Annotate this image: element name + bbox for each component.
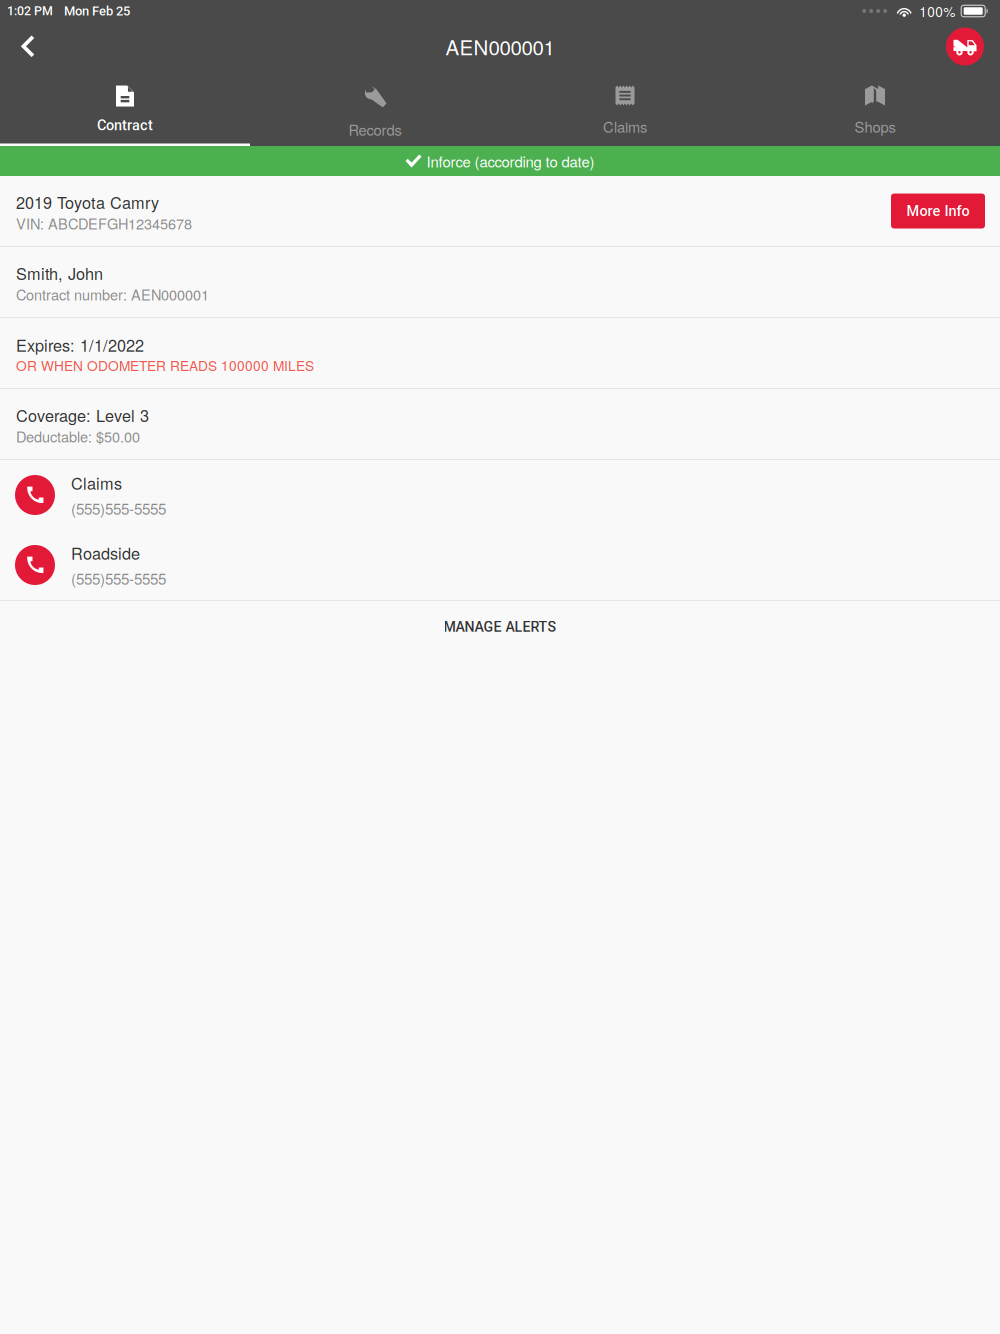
staticText: 2019 Toyota Camry xyxy=(16,190,159,214)
staticText: OR WHEN ODOMETER READS 100000 MILES xyxy=(16,355,314,375)
button[interactable]: Roadside assistance xyxy=(946,22,1000,70)
button[interactable]: More Info xyxy=(891,193,985,228)
staticText: More Info xyxy=(906,202,969,219)
staticText: Claims xyxy=(603,116,647,137)
staticText: AEN000001 xyxy=(445,32,554,61)
button[interactable]: Contract xyxy=(0,71,250,146)
button[interactable]: Claims xyxy=(500,71,750,146)
staticText: Deductable: $50.00 xyxy=(16,426,140,446)
button[interactable]: Roadside xyxy=(0,530,1000,600)
staticText: Roadside xyxy=(71,541,140,564)
staticText: VIN: ABCDEFGH12345678 xyxy=(16,213,192,233)
staticText: Contract xyxy=(97,117,153,134)
staticText: Claims xyxy=(71,471,122,494)
staticText: 100% xyxy=(919,1,955,21)
button[interactable]: MANAGE ALERTS xyxy=(0,601,1000,653)
button[interactable]: Back xyxy=(0,22,52,70)
staticText: Smith, John xyxy=(16,261,103,285)
staticText: (555)555-5555 xyxy=(71,567,166,589)
staticText: 1:02 PM xyxy=(7,4,53,18)
staticText: Expires: 1/1/2022 xyxy=(16,333,144,356)
staticText: Inforce (according to date) xyxy=(426,150,594,172)
staticText: Coverage: Level 3 xyxy=(16,403,149,427)
staticText: (555)555-5555 xyxy=(71,497,166,519)
button[interactable]: Records xyxy=(250,71,500,146)
button[interactable]: Shops xyxy=(750,71,1000,146)
staticText: MANAGE ALERTS xyxy=(443,619,556,635)
button[interactable]: Claims xyxy=(0,460,1000,530)
staticText: Shops xyxy=(854,116,895,137)
staticText: Records xyxy=(348,119,401,140)
staticText: Mon Feb 25 xyxy=(64,3,130,19)
staticText: Contract number: AEN000001 xyxy=(16,284,209,304)
